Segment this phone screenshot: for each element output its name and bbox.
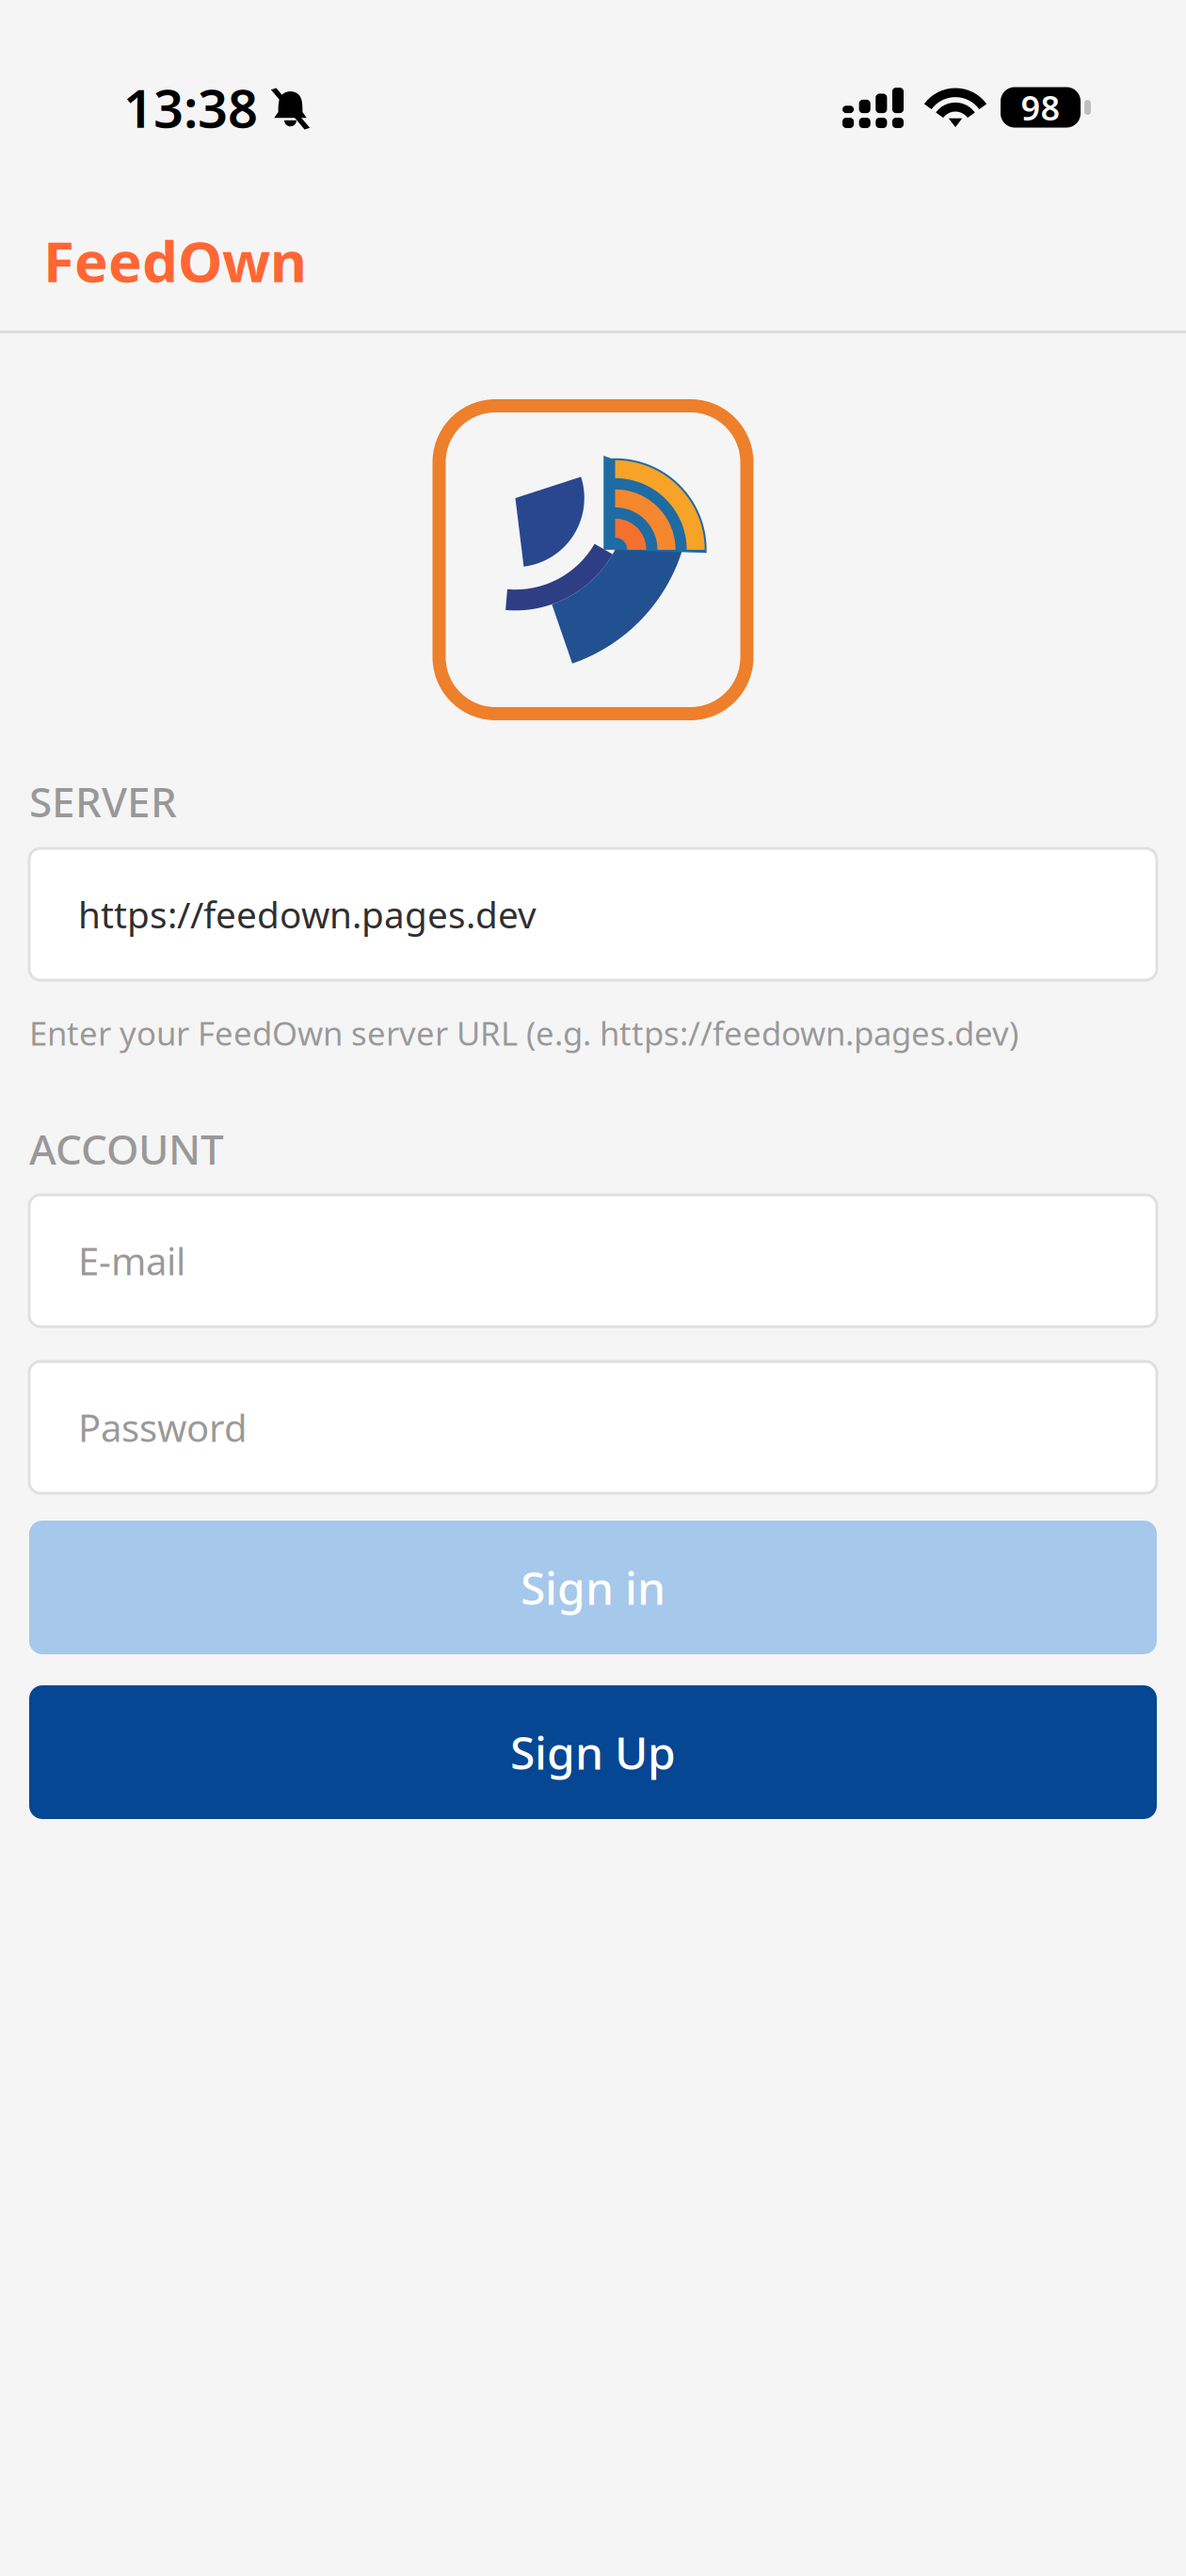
button[interactable]: Sign Up	[29, 1685, 1157, 1819]
staticText: FeedOwn	[43, 223, 307, 298]
staticText: Sign Up	[510, 1722, 676, 1782]
button[interactable]: Sign in	[29, 1521, 1157, 1654]
staticText: ACCOUNT	[29, 1121, 224, 1176]
staticText: SERVER	[29, 774, 177, 829]
staticText: https://feedown.pages.dev	[78, 890, 537, 938]
staticText: 13:38	[123, 72, 258, 142]
staticText: E-mail	[78, 1236, 185, 1286]
staticText: Password	[78, 1402, 248, 1452]
staticText: Enter your FeedOwn server URL (e.g. http…	[29, 1011, 1018, 1055]
staticText: 98	[1021, 85, 1060, 130]
staticText: Sign in	[521, 1557, 665, 1617]
